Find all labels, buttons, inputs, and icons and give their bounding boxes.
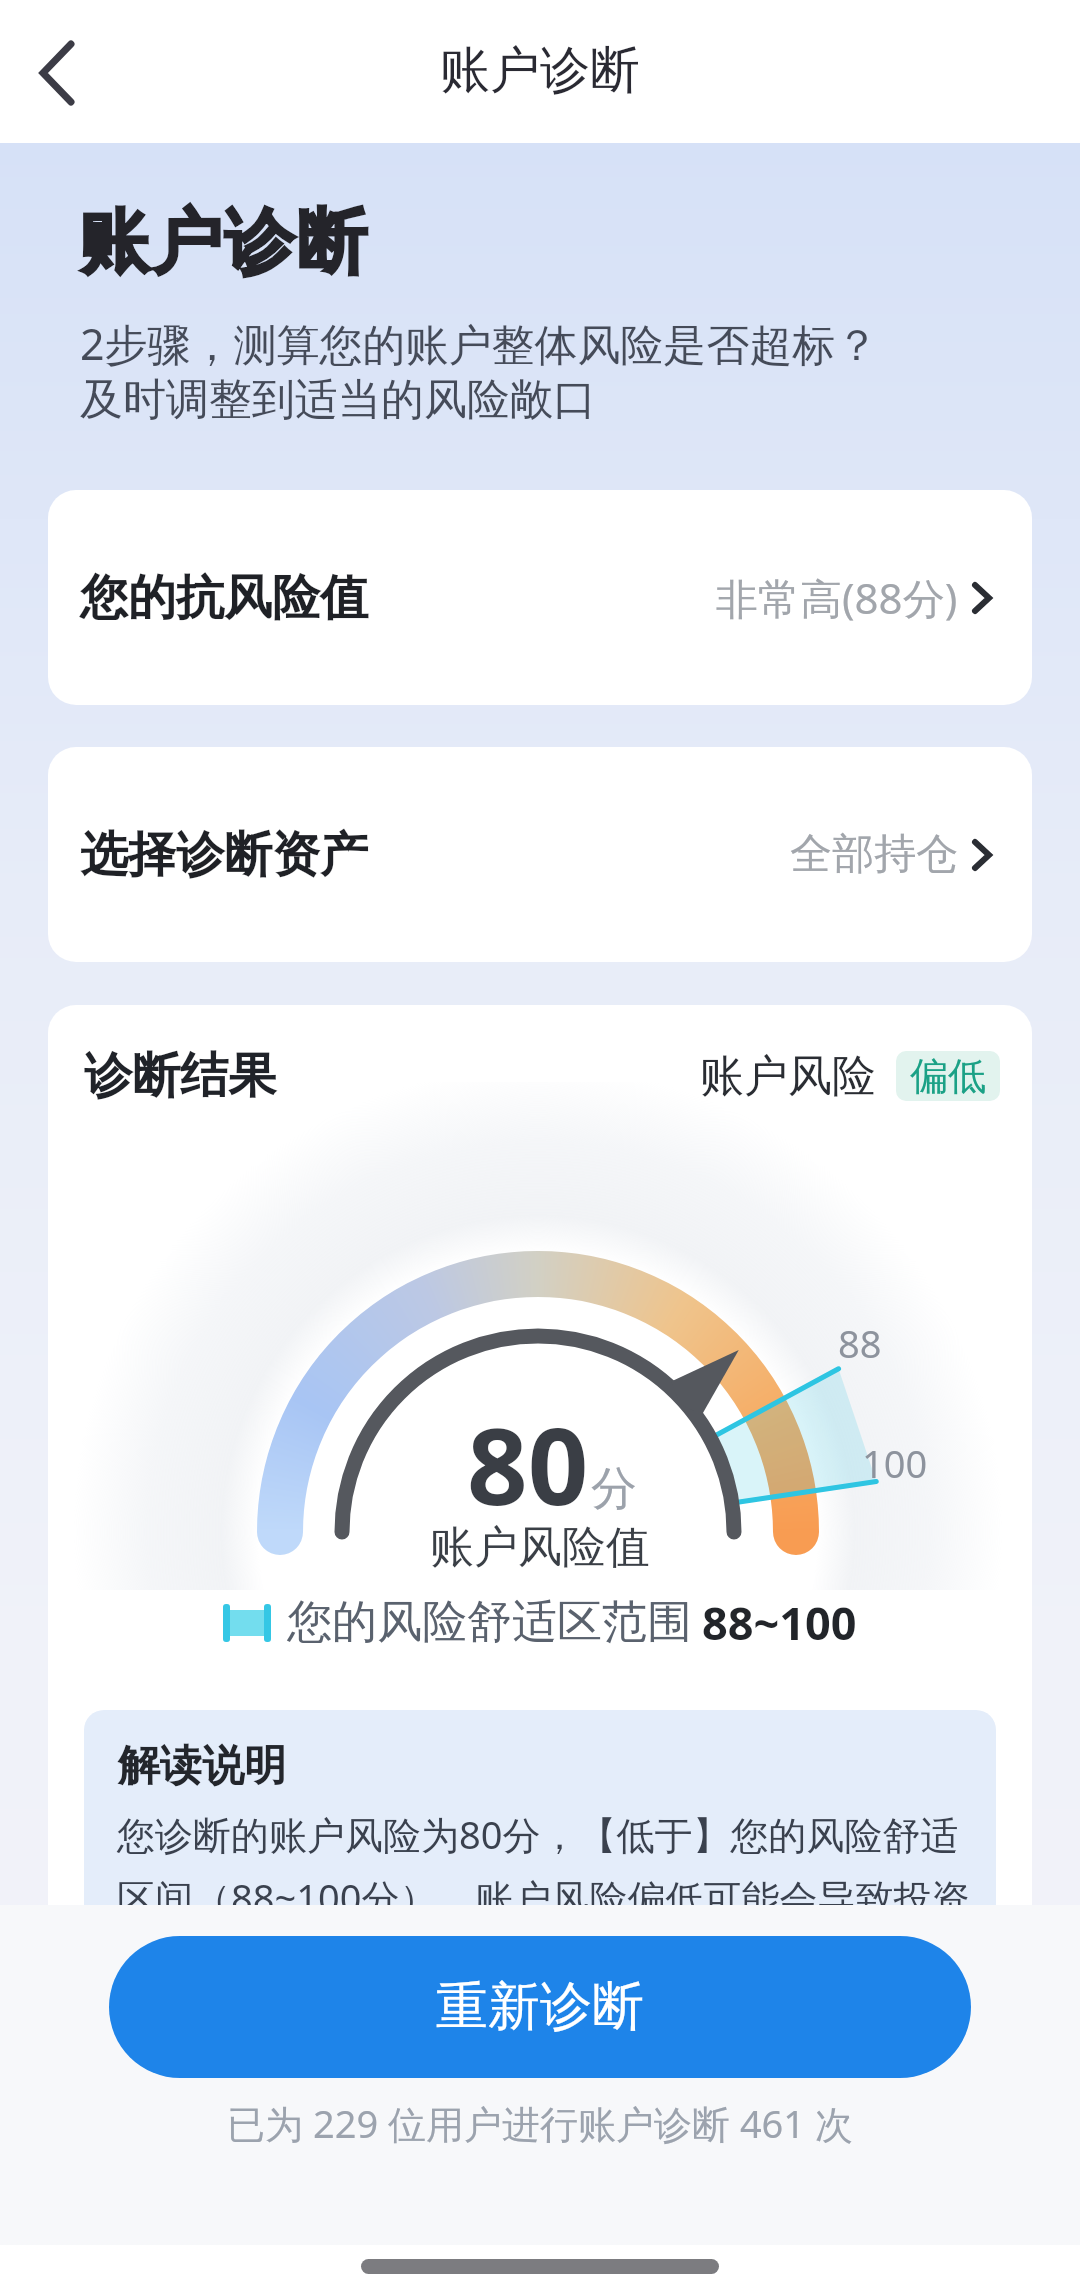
- staticText: 区间（88~100分）。账户风险偏低可能会导致投资: [117, 1871, 970, 1923]
- button[interactable]: 您的抗风险值: [48, 490, 1032, 705]
- staticText: 您的抗风险值: [80, 568, 368, 628]
- staticText: 您的风险舒适区范围: [287, 1594, 692, 1651]
- staticText: 80: [467, 1392, 589, 1536]
- staticText: 2步骤，测算您的账户整体风险是否超标？: [80, 314, 879, 373]
- staticText: 及时调整到适当的风险敞口: [80, 373, 596, 427]
- staticText: 100: [862, 1437, 928, 1489]
- staticText: 账户诊断: [78, 199, 368, 287]
- staticText: 88~100: [702, 1592, 857, 1653]
- staticText: 选择诊断资产: [80, 825, 368, 885]
- button[interactable]: [12, 25, 102, 120]
- staticText: 解读说明: [118, 1740, 286, 1793]
- staticText: 分: [591, 1460, 637, 1518]
- staticText: 账户风险: [700, 1049, 876, 1104]
- staticText: 诊断结果: [84, 1046, 276, 1106]
- staticText: 88: [838, 1317, 882, 1369]
- staticText: 账户诊断: [0, 39, 1080, 102]
- staticText: 偏低: [910, 1052, 986, 1100]
- button[interactable]: 选择诊断资产: [48, 747, 1032, 962]
- staticText: 已为 229 位用户进行账户诊断 461 次: [0, 2097, 1080, 2149]
- staticText: 账户风险值: [0, 1520, 1080, 1575]
- staticText: 您诊断的账户风险为80分，【低于】您的风险舒适: [117, 1808, 959, 1860]
- staticText: 重新诊断: [436, 1974, 644, 2040]
- button[interactable]: 重新诊断: [109, 1936, 971, 2078]
- staticText: 全部持仓: [790, 828, 958, 881]
- staticText: 非常高(88分): [716, 569, 958, 626]
